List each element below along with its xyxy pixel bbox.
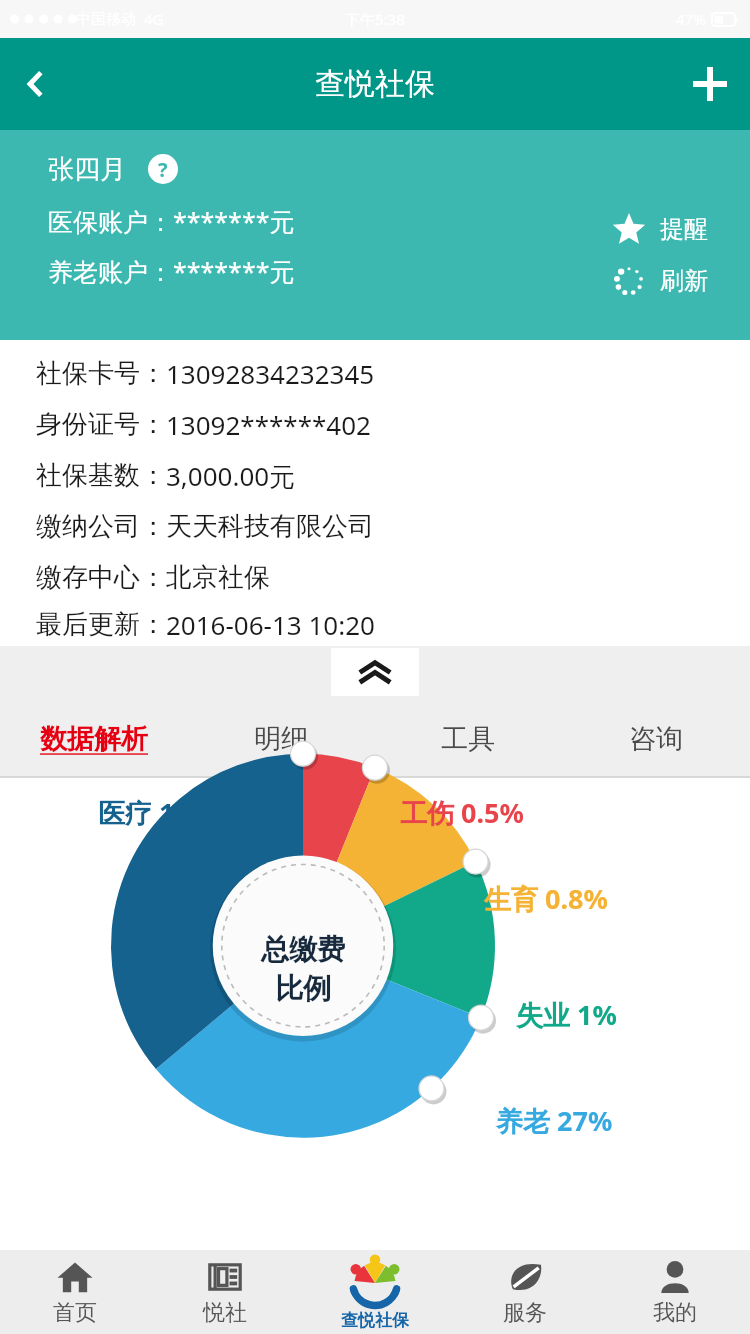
- button[interactable]: 首页: [0, 1250, 150, 1334]
- staticText: 缴存中心：: [36, 561, 166, 594]
- staticText: 首页: [53, 1299, 97, 1327]
- button[interactable]: 我的: [600, 1250, 750, 1334]
- button[interactable]: 悦社: [150, 1250, 300, 1334]
- staticText: 咨询: [629, 722, 683, 756]
- staticText: 比例: [275, 971, 331, 1006]
- staticText: 3,000.00元: [166, 458, 296, 494]
- button[interactable]: 刷新: [612, 260, 708, 302]
- staticText: 刷新: [660, 266, 708, 296]
- button[interactable]: 咨询: [562, 702, 750, 776]
- staticText: 社保卡号：: [36, 357, 166, 390]
- button[interactable]: 查悦社保: [300, 1250, 450, 1334]
- staticText: 服务: [503, 1299, 547, 1327]
- button[interactable]: 缴纳公司：: [36, 501, 750, 552]
- staticText: 查悦社保: [341, 1310, 409, 1331]
- staticText: 工伤 0.5%: [400, 794, 524, 831]
- staticText: 中国移动: [76, 10, 136, 29]
- staticText: 提醒: [660, 214, 708, 244]
- staticText: ?: [158, 156, 168, 183]
- button[interactable]: 社保卡号：: [36, 348, 750, 399]
- staticText: 查悦社保: [315, 65, 435, 103]
- button[interactable]: 社保基数：: [36, 450, 750, 501]
- staticText: 总缴费: [261, 932, 345, 967]
- staticText: 社保基数：: [36, 459, 166, 492]
- staticText: 工具: [441, 722, 495, 756]
- staticText: 医疗 10.2%+3: [98, 794, 269, 831]
- staticText: 13092******402: [166, 407, 371, 442]
- staticText: 我的: [653, 1299, 697, 1327]
- staticText: 身份证号：: [36, 408, 166, 441]
- button[interactable]: 提醒: [612, 208, 708, 250]
- button[interactable]: 工具: [374, 702, 562, 776]
- staticText: 13092834232345: [166, 356, 375, 391]
- staticText: 养老账户：*******元: [48, 254, 295, 288]
- staticText: 数据解析: [40, 722, 148, 756]
- staticText: 养老 27%: [496, 1102, 613, 1139]
- button[interactable]: Back: [0, 48, 72, 120]
- button[interactable]: 数据解析: [0, 702, 187, 776]
- staticText: 明细: [254, 722, 308, 756]
- staticText: 北京社保: [166, 561, 270, 594]
- staticText: 悦社: [203, 1299, 247, 1327]
- staticText: 医保账户：*******元: [48, 204, 295, 238]
- staticText: 最后更新：: [36, 608, 166, 641]
- button[interactable]: 缴存中心：: [36, 552, 750, 603]
- staticText: 张四月: [48, 153, 126, 186]
- staticText: 缴纳公司：: [36, 510, 166, 543]
- staticText: 生育 0.8%: [484, 880, 608, 917]
- button[interactable]: Help: [146, 152, 180, 186]
- button[interactable]: 最后更新：: [36, 603, 750, 646]
- staticText: 2016-06-13 10:20: [166, 607, 375, 642]
- button[interactable]: 服务: [450, 1250, 600, 1334]
- button[interactable]: Collapse: [331, 648, 419, 696]
- button[interactable]: 明细: [187, 702, 374, 776]
- staticText: 失业 1%: [516, 996, 617, 1033]
- button[interactable]: 身份证号：: [36, 399, 750, 450]
- staticText: 天天科技有限公司: [166, 510, 374, 543]
- button[interactable]: Add: [670, 44, 750, 124]
